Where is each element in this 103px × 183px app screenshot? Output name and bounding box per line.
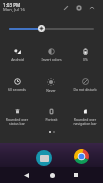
staticText: Android — [11, 57, 24, 62]
button[interactable]: Rounded over navigation bar — [68, 100, 102, 130]
button[interactable]: Android — [0, 40, 34, 70]
button[interactable]: Home — [44, 167, 60, 183]
staticText: 0% — [83, 57, 88, 62]
staticText: Portrait — [45, 117, 58, 122]
staticText: Rounded over navigation bar — [69, 117, 101, 126]
button[interactable]: Edit — [59, 1, 72, 14]
staticText: Never — [46, 88, 56, 93]
button[interactable]: Recents — [68, 167, 84, 183]
button[interactable]: Rounded over status bar — [0, 100, 34, 130]
staticText: Do not disturb — [73, 87, 97, 92]
button[interactable]: 60 seconds — [0, 70, 34, 100]
button[interactable]: Invert colors — [34, 40, 68, 70]
button[interactable]: Brightness — [38, 25, 45, 32]
button[interactable]: Portrait — [34, 100, 68, 130]
button[interactable]: App — [36, 150, 52, 166]
button[interactable]: Back — [18, 167, 34, 183]
staticText: 60 seconds — [8, 87, 26, 92]
button[interactable]: Collapse — [85, 1, 98, 14]
staticText: Rounded over status bar — [1, 117, 33, 126]
staticText: Mon, Jul 16 — [3, 7, 25, 13]
button[interactable]: Settings — [72, 1, 85, 14]
button[interactable]: Never — [34, 70, 68, 100]
button[interactable]: Chrome — [74, 149, 89, 164]
staticText: 1:03 PM — [3, 2, 21, 8]
button[interactable]: 0% — [68, 40, 102, 70]
staticText: Invert colors — [41, 57, 62, 62]
button[interactable]: Do not disturb — [68, 70, 102, 100]
